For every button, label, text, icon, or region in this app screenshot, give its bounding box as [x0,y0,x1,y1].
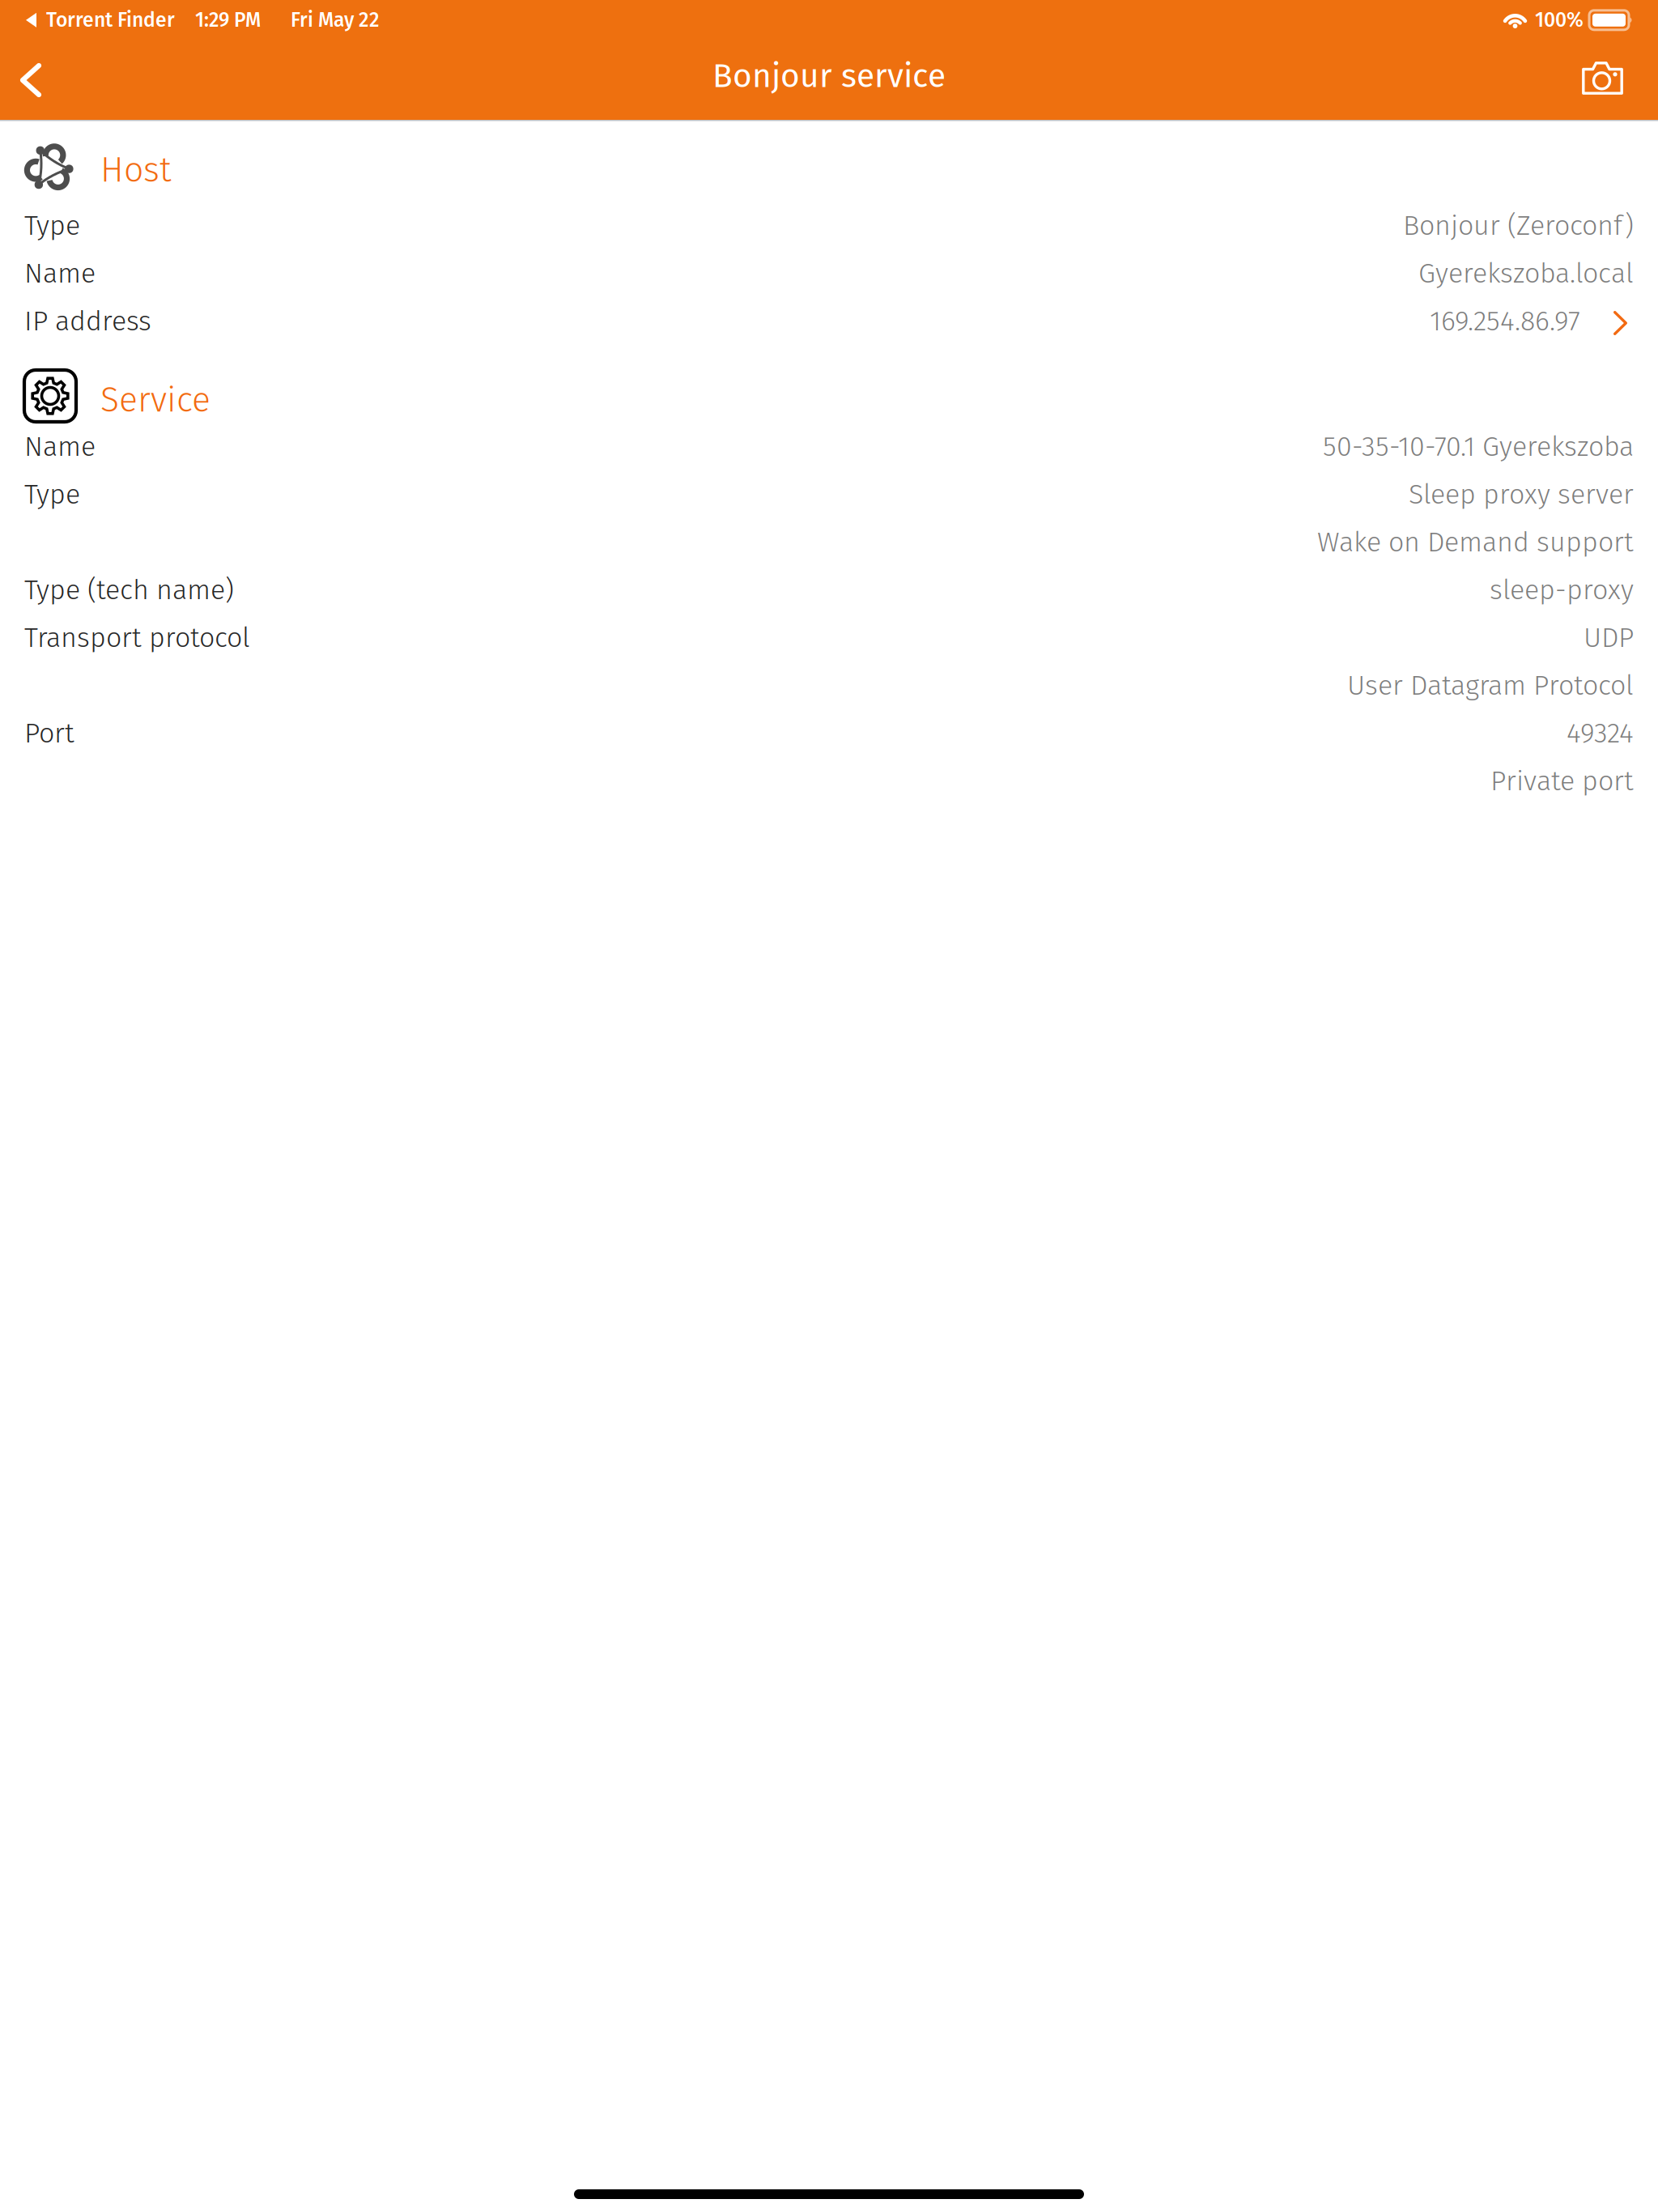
staticText: Type [24,209,80,242]
staticText: 169.254.86.97 [1430,305,1580,338]
staticText: User Datagram Protocol [1347,669,1634,702]
button[interactable]: Camera [1558,44,1658,108]
staticText: Name [24,257,96,290]
staticText: UDP [1584,621,1634,654]
staticText: 50-35-10-70.1 Gyerekszoba [1323,430,1634,463]
staticText: Host [100,149,172,191]
staticText: Service [100,379,210,421]
staticText: Sleep proxy server [1409,478,1634,511]
staticText: Torrent Finder [46,8,175,32]
staticText: Bonjour service [712,56,946,96]
staticText: Type (tech name) [24,573,234,606]
staticText: Name [24,430,96,463]
staticText: Type [24,478,80,511]
staticText: 1:29 PM [195,8,261,32]
staticText: 49324 [1567,717,1634,750]
staticText: sleep-proxy [1490,573,1634,606]
button[interactable]: IP address [24,297,1634,345]
staticText: Port [24,717,74,750]
staticText: Private port [1490,764,1634,797]
staticText: Gyerekszoba.local [1418,257,1634,290]
button[interactable]: Back [0,44,66,108]
staticText: 100% [1535,8,1584,32]
staticText: Transport protocol [24,621,250,654]
staticText: Wake on Demand support [1317,526,1634,559]
staticText: Bonjour (Zeroconf) [1403,209,1634,242]
staticText: Fri May 22 [291,8,380,32]
staticText: IP address [24,305,151,338]
